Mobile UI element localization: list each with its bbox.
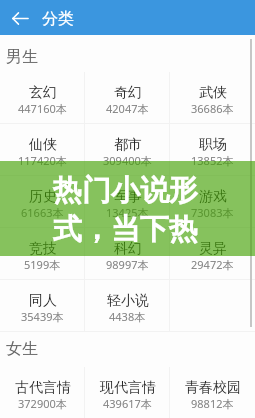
- staticText: 热门小说形: [53, 172, 198, 209]
- staticText: 73083本: [191, 205, 234, 220]
- staticText: 4438本: [109, 309, 146, 324]
- staticText: 古代言情: [15, 379, 71, 397]
- staticText: 309400本: [103, 153, 152, 168]
- button[interactable]: 仙侠: [0, 124, 85, 175]
- button[interactable]: Back: [3, 1, 37, 35]
- staticText: 武侠: [199, 84, 227, 102]
- button[interactable]: 历史: [0, 176, 85, 227]
- button[interactable]: 同人: [0, 280, 85, 331]
- staticText: 游戏: [199, 188, 227, 206]
- staticText: 439617本: [103, 396, 152, 411]
- staticText: 科幻: [114, 240, 142, 258]
- staticText: 98997本: [106, 257, 149, 272]
- staticText: 13852本: [191, 153, 234, 168]
- button[interactable]: 轻小说: [85, 280, 170, 331]
- staticText: 42047本: [106, 101, 149, 116]
- staticText: 轻小说: [107, 292, 149, 310]
- button[interactable]: 竞技: [0, 228, 85, 279]
- button[interactable]: 灵异: [170, 228, 255, 279]
- button[interactable]: 古代言情: [0, 367, 85, 418]
- button[interactable]: 玄幻: [0, 72, 85, 123]
- staticText: 447160本: [18, 101, 67, 116]
- staticText: 灵异: [199, 240, 227, 258]
- staticText: 98812本: [191, 396, 234, 411]
- staticText: 36686本: [191, 101, 234, 116]
- button[interactable]: 职场: [170, 124, 255, 175]
- staticText: 13425本: [106, 205, 149, 220]
- staticText: 现代言情: [100, 379, 156, 397]
- staticText: 青春校园: [185, 379, 241, 397]
- staticText: 军事: [114, 188, 142, 206]
- button[interactable]: 科幻: [85, 228, 170, 279]
- button[interactable]: 游戏: [170, 176, 255, 227]
- button[interactable]: 军事: [85, 176, 170, 227]
- staticText: 女生: [6, 339, 38, 359]
- button[interactable]: 青春校园: [170, 367, 255, 418]
- staticText: 仙侠: [29, 136, 57, 154]
- staticText: 5199本: [24, 257, 61, 272]
- staticText: 竞技: [29, 240, 57, 258]
- staticText: 玄幻: [29, 84, 57, 102]
- staticText: 历史: [29, 188, 57, 206]
- button[interactable]: 奇幻: [85, 72, 170, 123]
- button[interactable]: 现代言情: [85, 367, 170, 418]
- staticText: 35439本: [21, 309, 64, 324]
- staticText: 式，当下热: [53, 211, 198, 248]
- staticText: 男生: [6, 47, 38, 67]
- staticText: 都市: [114, 136, 142, 154]
- staticText: 同人: [29, 292, 57, 310]
- staticText: 29472本: [191, 257, 234, 272]
- button[interactable]: 武侠: [170, 72, 255, 123]
- staticText: 分类: [42, 9, 74, 29]
- staticText: 61663本: [21, 205, 64, 220]
- staticText: 372900本: [18, 396, 67, 411]
- button[interactable]: 都市: [85, 124, 170, 175]
- staticText: 奇幻: [114, 84, 142, 102]
- staticText: 117420本: [18, 153, 67, 168]
- staticText: 职场: [199, 136, 227, 154]
